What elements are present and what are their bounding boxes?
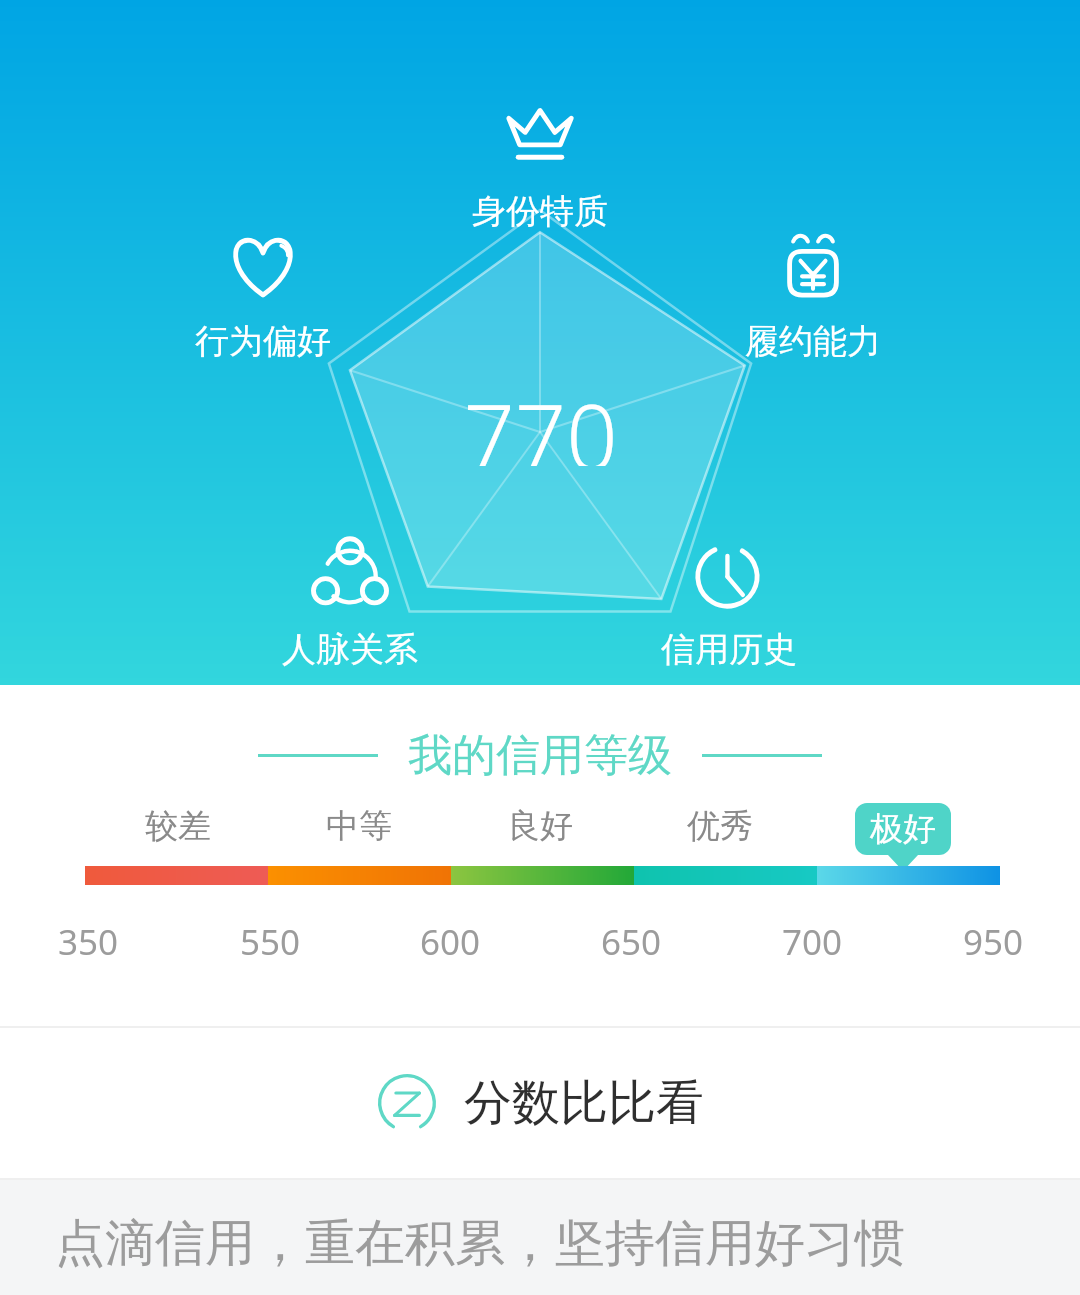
staticText: 行为偏好 [195,320,331,363]
staticText: 中等 [326,805,392,847]
button[interactable]: 分数比比看 [0,1028,1080,1178]
button[interactable]: 身份特质 [440,98,640,233]
staticText: 身份特质 [472,190,608,233]
staticText: 优秀 [687,805,753,847]
button[interactable]: 良好 [470,805,610,847]
staticText: 较差 [145,805,211,847]
staticText: 350 [58,918,119,966]
button[interactable]: 履约能力 [713,228,913,363]
button[interactable]: 中等 [289,805,429,847]
staticText: 600 [420,918,481,966]
button[interactable]: 人脉关系 [250,536,450,671]
staticText: 履约能力 [745,320,881,363]
staticText: 分数比比看 [464,1073,704,1133]
button[interactable]: 较差 [108,805,248,847]
button[interactable]: 优秀 [650,805,790,847]
staticText: 650 [601,918,662,966]
staticText: 点滴信用，重在积累，坚持信用好习惯 [55,1212,905,1275]
button[interactable]: 极好 [855,803,951,871]
button[interactable]: 信用历史 [629,536,829,671]
staticText: 我的信用等级 [408,728,672,783]
staticText: 信用历史 [661,628,797,671]
staticText: 良好 [507,805,573,847]
staticText: 950 [963,918,1024,966]
staticText: 550 [240,918,301,966]
staticText: 700 [782,918,843,966]
staticText: 770 [463,374,618,466]
button[interactable]: 行为偏好 [163,228,363,363]
staticText: 人脉关系 [282,628,418,671]
staticText: 极好 [870,808,936,850]
